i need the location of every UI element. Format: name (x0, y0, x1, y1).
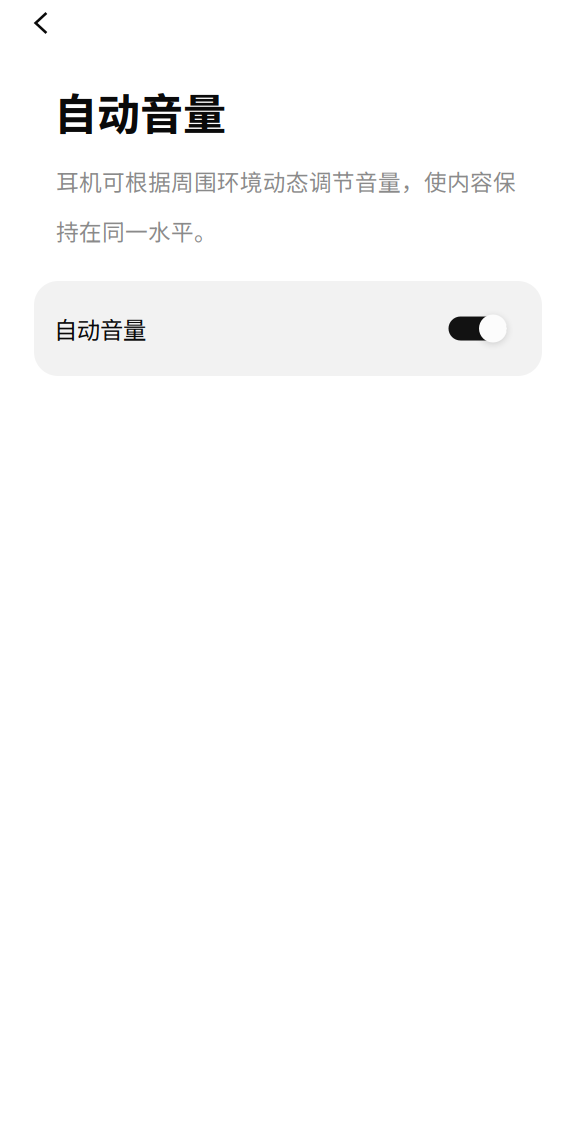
staticText: 自动音量 (54, 312, 146, 345)
staticText: 自动音量 (54, 80, 226, 142)
staticText: 耳机可根据周围环境动态调节音量，使内容保持在同一水平。 (56, 164, 516, 247)
button[interactable]: 自动音量 (34, 281, 542, 376)
button[interactable]: Back (15, 0, 67, 46)
